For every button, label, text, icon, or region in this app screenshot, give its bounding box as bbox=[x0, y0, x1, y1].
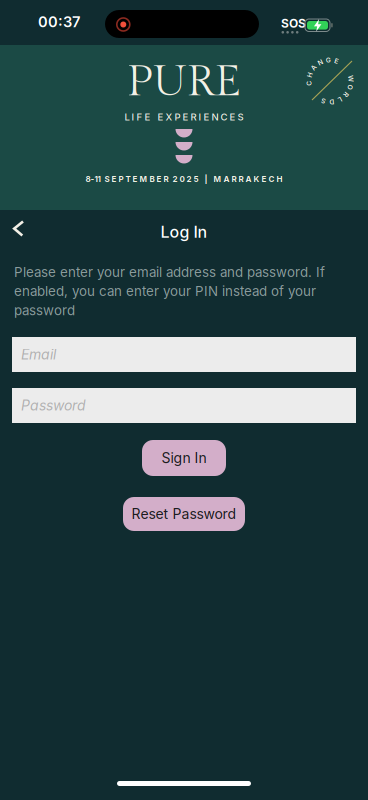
staticText: H bbox=[307, 71, 312, 79]
staticText: PURE bbox=[126, 56, 241, 107]
staticText: W bbox=[347, 75, 354, 83]
staticText: Password bbox=[21, 397, 86, 414]
staticText: 8-11 S E P T E M B E R 2 0 2 5 | M A R R… bbox=[85, 174, 282, 184]
staticText: O bbox=[348, 83, 353, 91]
staticText: Email bbox=[21, 346, 56, 363]
button[interactable]: Back bbox=[0, 210, 44, 254]
button[interactable]: Sign In bbox=[142, 440, 226, 476]
staticText: E bbox=[334, 57, 338, 65]
staticText: G bbox=[326, 56, 331, 64]
staticText: L I F E E X P E R I E N C E S bbox=[124, 111, 243, 123]
button[interactable]: Email bbox=[12, 337, 356, 372]
staticText: 00:37 bbox=[38, 13, 80, 31]
staticText: L bbox=[338, 96, 342, 104]
staticText: N bbox=[318, 58, 323, 66]
staticText: S bbox=[321, 97, 325, 105]
staticText: Reset Password bbox=[131, 505, 236, 522]
button[interactable]: Password bbox=[12, 388, 356, 423]
button[interactable]: Reset Password bbox=[123, 497, 245, 531]
staticText: C bbox=[307, 79, 312, 87]
staticText: R bbox=[344, 90, 348, 98]
staticText: SOS bbox=[281, 16, 306, 30]
staticText: A bbox=[311, 64, 316, 72]
staticText: Log In bbox=[160, 222, 207, 242]
staticText: D bbox=[329, 98, 334, 106]
staticText: Sign In bbox=[161, 449, 206, 466]
staticText: Please enter your email address and pass… bbox=[14, 264, 325, 318]
